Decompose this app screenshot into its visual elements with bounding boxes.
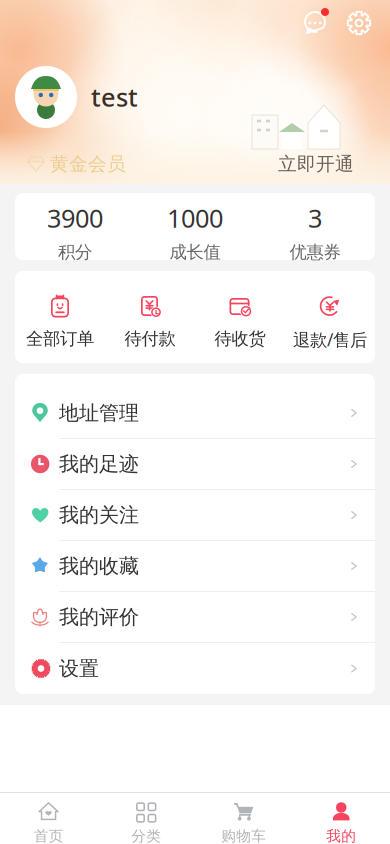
button[interactable]: 3900 <box>15 193 135 260</box>
staticText: 1000 <box>167 201 223 235</box>
button[interactable]: 设置 <box>15 643 375 694</box>
button[interactable]: 立即开通 <box>272 146 360 181</box>
button[interactable]: 3 <box>255 193 375 260</box>
button[interactable]: 待收货 <box>195 271 285 363</box>
button[interactable]: 1000 <box>135 193 255 260</box>
staticText: 3900 <box>47 201 103 235</box>
staticText: 分类 <box>131 827 161 844</box>
button[interactable]: 退款/售后 <box>285 271 375 363</box>
staticText: 立即开通 <box>278 152 354 175</box>
button[interactable]: 我的 <box>292 793 390 844</box>
button[interactable]: 首页 <box>0 793 97 844</box>
staticText: 黄金会员 <box>50 152 126 175</box>
staticText: 我的关注 <box>59 503 139 527</box>
button[interactable]: 我的关注 <box>15 490 375 541</box>
button[interactable]: 全部订单 <box>15 271 105 363</box>
button[interactable]: 我的足迹 <box>15 439 375 490</box>
staticText: 优惠券 <box>289 242 340 263</box>
button[interactable]: 地址管理 <box>15 388 375 439</box>
button[interactable]: 待付款 <box>105 271 195 363</box>
staticText: 待付款 <box>124 328 175 349</box>
button[interactable]: Messages <box>298 6 332 40</box>
staticText: 退款/售后 <box>293 328 367 351</box>
button[interactable]: 分类 <box>97 793 195 844</box>
staticText: 我的 <box>326 827 356 844</box>
staticText: 我的足迹 <box>59 452 139 476</box>
staticText: 购物车 <box>221 827 266 844</box>
staticText: 全部订单 <box>26 328 94 349</box>
staticText: 设置 <box>59 656 99 681</box>
button[interactable]: Settings <box>342 6 376 40</box>
staticText: test <box>91 80 138 114</box>
staticText: 首页 <box>34 827 64 844</box>
staticText: 我的评价 <box>59 605 139 629</box>
staticText: 积分 <box>58 242 92 263</box>
button[interactable]: 购物车 <box>195 793 292 844</box>
staticText: 3 <box>308 201 322 235</box>
staticText: 地址管理 <box>59 401 139 425</box>
staticText: 待收货 <box>214 328 265 349</box>
staticText: 我的收藏 <box>59 554 139 578</box>
staticText: 成长值 <box>169 242 220 263</box>
button[interactable]: 我的收藏 <box>15 541 375 592</box>
button[interactable]: 我的评价 <box>15 592 375 643</box>
